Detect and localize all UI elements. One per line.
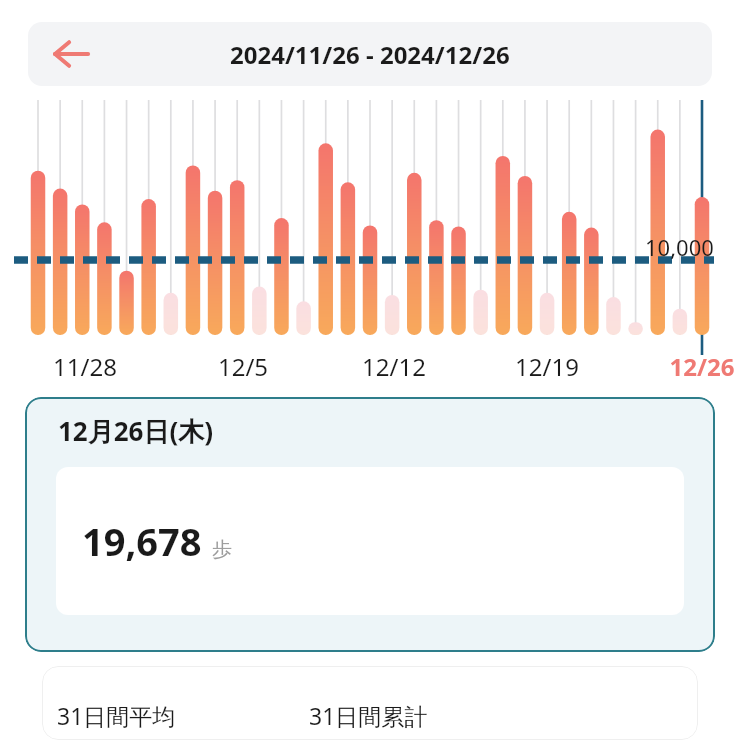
staticText: 11/28: [25, 350, 145, 383]
staticText: 12/26: [642, 350, 740, 383]
staticText: 12/12: [334, 350, 454, 383]
staticText: 2024/11/26 - 2024/12/26: [230, 38, 510, 71]
staticText: 10,000: [645, 232, 714, 262]
button[interactable]: 12月26日(木): [25, 397, 715, 652]
staticText: 12月26日(木): [58, 413, 214, 449]
button[interactable]: Back: [42, 25, 100, 83]
staticText: 12/19: [487, 350, 607, 383]
staticText: 31日間平均: [57, 700, 309, 731]
staticText: 歩: [212, 537, 232, 562]
staticText: 12/5: [183, 350, 303, 383]
staticText: 31日間累計: [309, 700, 428, 731]
button[interactable]: 31日間平均: [42, 666, 698, 740]
staticText: 19,678: [82, 515, 202, 567]
